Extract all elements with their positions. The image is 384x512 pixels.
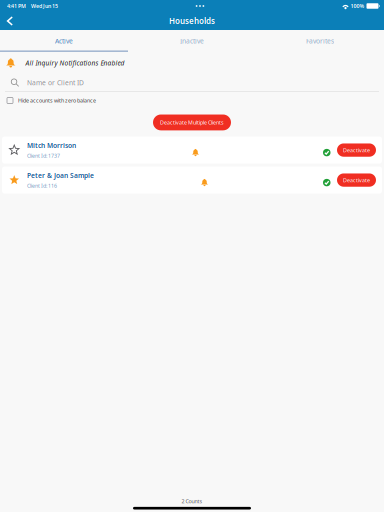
button[interactable]: Back [0,12,20,30]
button[interactable]: Favorites [256,31,384,51]
staticText: Deactivate [343,176,370,184]
staticText: Favorites [306,37,334,45]
staticText: Households [169,16,215,26]
button[interactable]: Deactivate Multiple Clients [153,114,231,130]
staticText: Deactivate Multiple Clients [160,119,224,126]
staticText: Peter & Joan Sample [27,171,94,180]
staticText: Client Id: 1737 [27,152,60,159]
staticText: Mitch Morrison [27,141,76,150]
button[interactable]: Inactive [128,31,256,51]
staticText: Inactive [180,37,204,45]
staticText: Hide accounts with zero balance [18,97,96,104]
button[interactable]: Remove from favorites [2,167,26,194]
staticText: Active [55,37,73,45]
staticText: 4:41 PM [7,2,26,10]
staticText: All Inquiry Notifications Enabled [25,59,124,67]
button[interactable]: Hide accounts with zero balance [0,92,384,109]
staticText: Client Id: 116 [27,182,57,189]
staticText: Deactivate [343,146,370,154]
button[interactable]: Deactivate [337,143,376,157]
button[interactable]: Deactivate [337,173,376,187]
button[interactable]: Active [0,31,128,51]
staticText: Wed Jun 15 [31,2,58,10]
button[interactable]: Add to favorites [2,137,26,164]
staticText: 2 Counts [181,498,202,505]
staticText: 100% [350,2,364,10]
staticText: Name or Client ID [27,78,84,87]
